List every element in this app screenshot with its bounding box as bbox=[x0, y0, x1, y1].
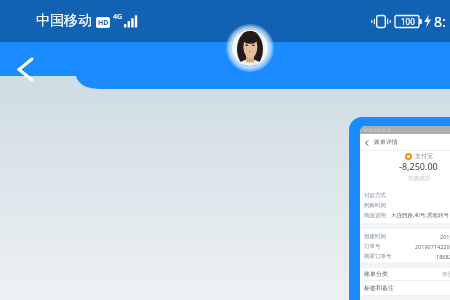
staticText: 8: bbox=[434, 12, 446, 31]
staticText: 2019071422001496431234 bbox=[415, 243, 450, 250]
staticText: 创建时间 bbox=[364, 233, 386, 240]
button[interactable]: Back bbox=[12, 56, 38, 82]
staticText: 商品说明 bbox=[364, 212, 386, 219]
staticText: 18682951234567 bbox=[436, 253, 450, 260]
staticText: 账单分类 bbox=[364, 270, 388, 278]
staticText: 交易成功 bbox=[408, 175, 430, 182]
staticText: HD bbox=[98, 18, 109, 28]
staticText: 4G bbox=[113, 12, 123, 22]
staticText: 订单号 bbox=[364, 243, 381, 250]
staticText: 支付宝 bbox=[415, 152, 433, 160]
staticText: 付款方式 bbox=[364, 192, 386, 199]
button[interactable]: 账单详情 bbox=[360, 126, 450, 300]
staticText: 中国移动 bbox=[36, 12, 92, 30]
staticText: 到账时间 bbox=[364, 202, 386, 209]
staticText: 100 bbox=[401, 16, 415, 27]
staticText: 2019-07-14 22:00:14 bbox=[440, 233, 450, 240]
staticText: 大连西路,和号,房地转号【888】#商品详情 bbox=[391, 211, 450, 219]
staticText: 未分类 bbox=[442, 271, 450, 278]
button[interactable]: Profile picture bbox=[226, 24, 274, 72]
staticText: -8,250.00 bbox=[399, 160, 438, 172]
staticText: 商家订单号 bbox=[364, 253, 392, 260]
other: Vibrate bbox=[371, 14, 391, 29]
staticText: 标签和备注 bbox=[364, 284, 394, 292]
staticText: 账单详情 bbox=[374, 138, 398, 146]
button[interactable]: 标签和备注 bbox=[364, 281, 450, 295]
button[interactable]: 账单分类 bbox=[364, 268, 450, 280]
